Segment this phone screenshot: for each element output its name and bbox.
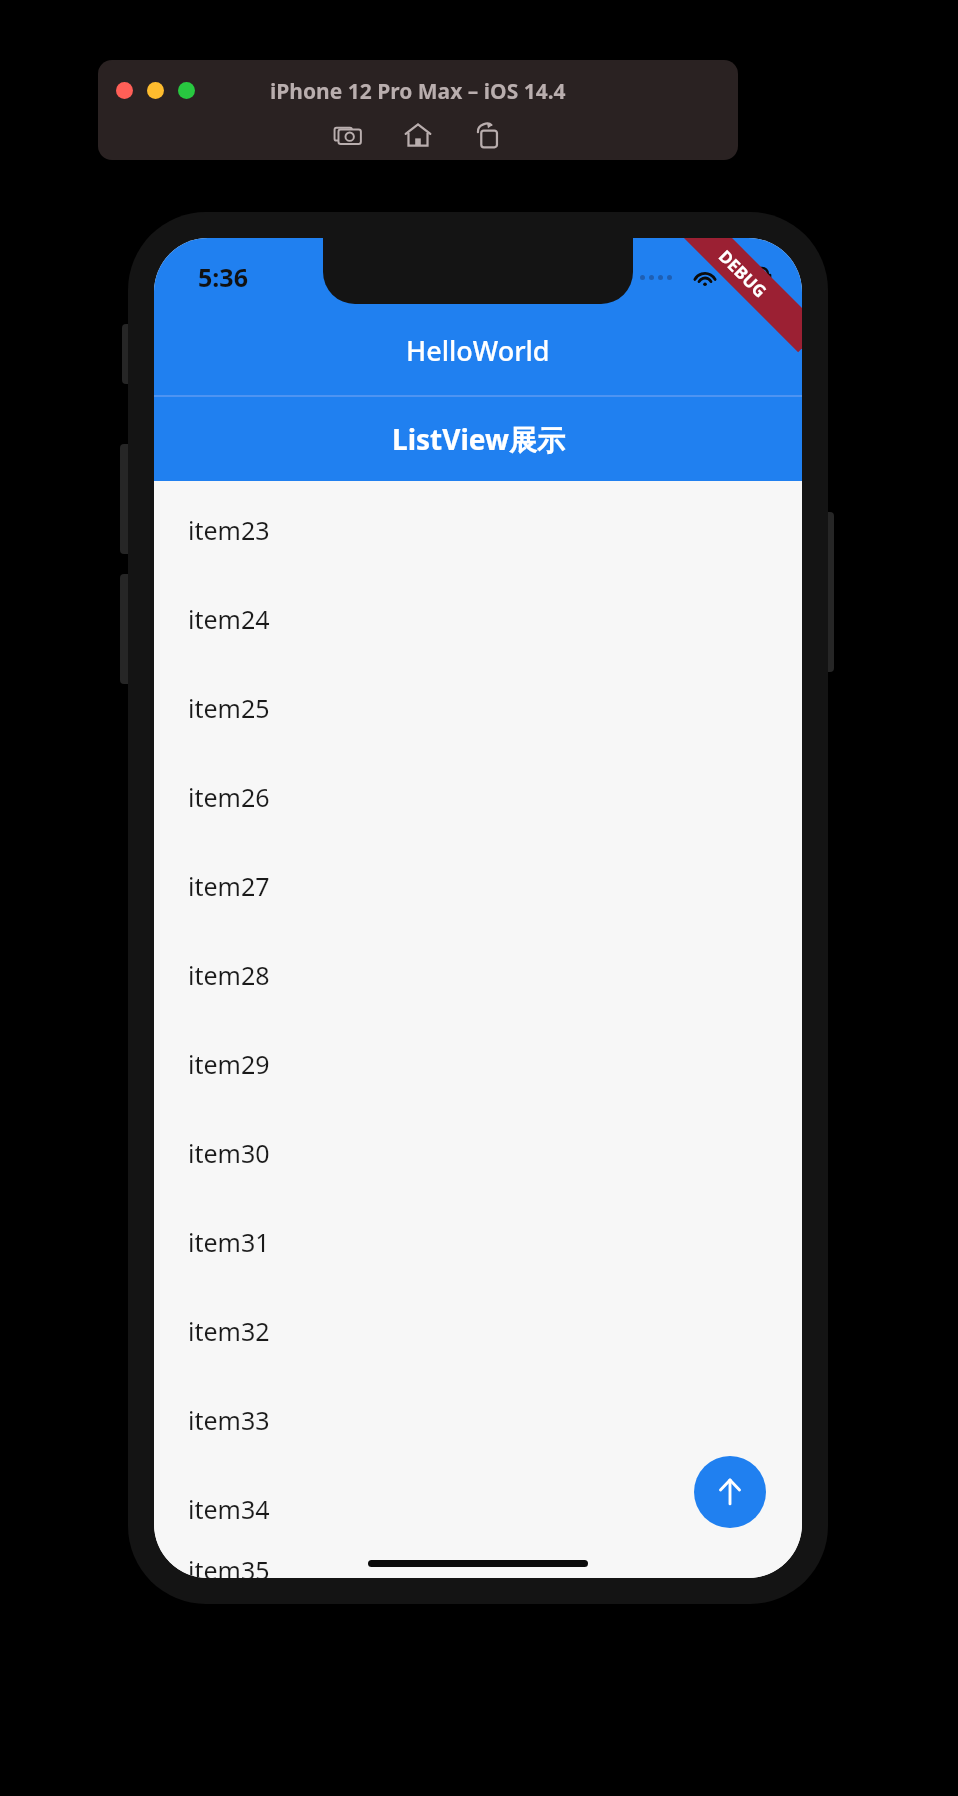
staticText: item28 [188,958,270,992]
button[interactable]: Minimize [147,82,164,99]
button[interactable]: item28 [154,930,802,1019]
button[interactable]: item31 [154,1197,802,1286]
button[interactable]: Screenshot [331,118,365,152]
button[interactable]: Zoom [178,82,195,99]
staticText: item33 [188,1403,270,1437]
button[interactable]: Rotate [471,118,505,152]
staticText: HelloWorld [406,332,550,369]
button[interactable]: Scroll to top [694,1456,766,1528]
button[interactable]: item25 [154,663,802,752]
button[interactable]: item35 [154,1553,802,1578]
staticText: item23 [188,513,270,547]
staticText: item30 [188,1136,270,1170]
button[interactable]: item32 [154,1286,802,1375]
button[interactable]: item33 [154,1375,802,1464]
staticText: ListView展示 [392,420,565,458]
button[interactable]: item27 [154,841,802,930]
staticText: item31 [188,1225,270,1259]
button[interactable]: Close [116,82,133,99]
staticText: 5:36 [198,260,248,294]
staticText: item32 [188,1314,270,1348]
button[interactable]: item29 [154,1019,802,1108]
button[interactable]: ListView展示 [154,397,802,481]
button[interactable]: item34 [154,1464,802,1553]
staticText: item35 [188,1553,270,1578]
staticText: item27 [188,869,270,903]
button[interactable]: Home [401,118,435,152]
button[interactable]: item23 [154,485,802,574]
staticText: item24 [188,602,270,636]
button[interactable]: item24 [154,574,802,663]
staticText: item29 [188,1047,270,1081]
button[interactable]: item30 [154,1108,802,1197]
button[interactable]: item26 [154,752,802,841]
staticText: item26 [188,780,270,814]
staticText: item25 [188,691,270,725]
staticText: DEBUG [714,245,772,303]
staticText: iPhone 12 Pro Max – iOS 14.4 [270,77,566,106]
staticText: item34 [188,1492,270,1526]
